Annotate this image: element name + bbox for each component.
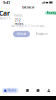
staticText: Home: [8, 89, 17, 92]
button[interactable]: Trips: [26, 89, 29, 92]
button[interactable]: Unlock: [13, 31, 30, 37]
staticText: Car: [0, 9, 10, 18]
button[interactable]: Home: [2, 88, 18, 93]
button[interactable]: Charging: [36, 89, 39, 92]
button[interactable]: Profile: [47, 89, 50, 92]
staticText: Last charged 2 hours ago: [11, 24, 45, 28]
staticText: Always on: [35, 32, 48, 36]
staticText: Ready: [46, 11, 55, 15]
staticText: 212 miles: [15, 18, 23, 26]
staticText: Unlock: [16, 32, 26, 36]
staticText: 9:41: [3, 0, 10, 5]
staticText: Model S: [0, 17, 10, 20]
staticText: Range: [14, 14, 23, 17]
staticText: Overview: [22, 6, 34, 9]
